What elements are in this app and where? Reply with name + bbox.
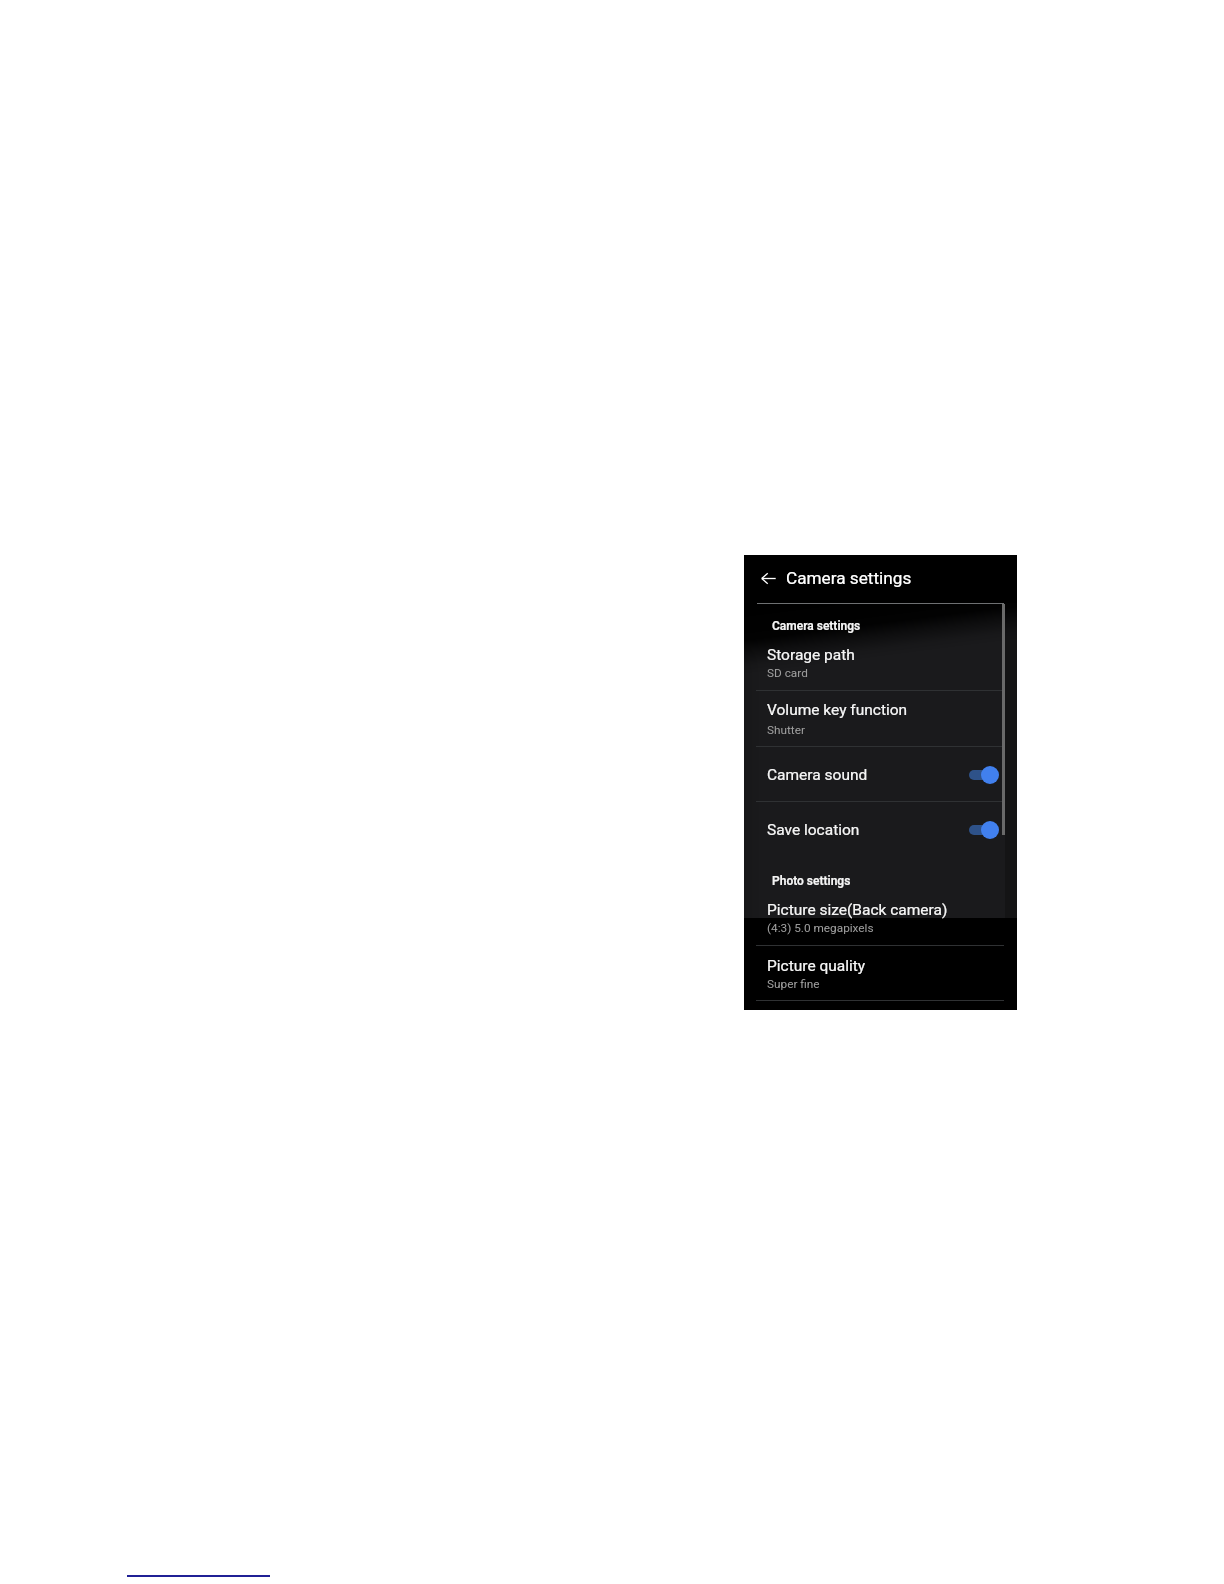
staticText: Picture quality <box>767 957 866 975</box>
button[interactable]: Save location, on <box>961 819 1001 841</box>
staticText: Shutter <box>767 723 805 737</box>
button[interactable]: Navigate up <box>757 567 779 589</box>
button[interactable] <box>744 801 1017 856</box>
button[interactable] <box>744 895 1017 945</box>
staticText: Camera settings <box>772 619 861 633</box>
staticText: Camera sound <box>767 766 868 784</box>
staticText: Picture size(Back camera) <box>767 901 948 919</box>
button[interactable] <box>744 945 1017 1000</box>
staticText: Storage path <box>767 646 855 664</box>
staticText: (4:3) 5.0 megapixels <box>767 921 874 935</box>
staticText: Super fine <box>767 977 820 991</box>
staticText: Save location <box>767 821 860 839</box>
staticText: Volume key function <box>767 701 908 719</box>
staticText: Photo settings <box>772 874 851 888</box>
button[interactable] <box>744 603 1017 690</box>
button[interactable] <box>744 746 1017 800</box>
staticText: SD card <box>767 666 808 680</box>
staticText: Camera settings <box>786 568 912 588</box>
button[interactable] <box>744 690 1017 747</box>
button[interactable]: Camera sound, on <box>961 764 1001 786</box>
